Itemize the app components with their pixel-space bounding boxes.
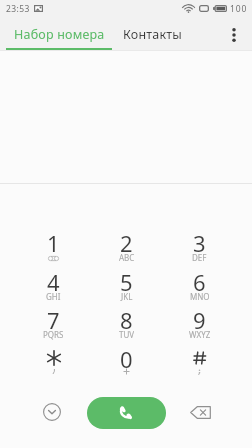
staticText: 5 bbox=[120, 267, 133, 297]
staticText: 23:53 bbox=[6, 3, 30, 15]
button[interactable]: More options bbox=[220, 18, 248, 50]
staticText: 6 bbox=[193, 267, 206, 297]
button[interactable] bbox=[163, 344, 236, 383]
staticText: ABC bbox=[119, 252, 135, 263]
staticText: TUV bbox=[119, 329, 135, 340]
staticText: 4 bbox=[47, 267, 60, 297]
button[interactable]: 0 bbox=[90, 344, 163, 383]
button[interactable]: 2 bbox=[90, 228, 163, 267]
staticText: Набор номера bbox=[14, 26, 105, 43]
staticText: 100 bbox=[230, 3, 248, 15]
staticText: 1 bbox=[47, 228, 60, 258]
staticText: 7 bbox=[47, 305, 60, 335]
button[interactable]: Контакты bbox=[112, 17, 192, 51]
staticText: PQRS bbox=[43, 329, 64, 340]
staticText: GHI bbox=[46, 291, 61, 302]
button[interactable]: 6 bbox=[163, 267, 236, 306]
staticText: JKL bbox=[121, 291, 133, 302]
staticText: DEF bbox=[192, 252, 207, 263]
button[interactable]: 4 bbox=[17, 267, 90, 306]
button[interactable]: 3 bbox=[163, 228, 236, 267]
button[interactable]: Hide keypad bbox=[36, 396, 68, 428]
button[interactable]: 7 bbox=[17, 305, 90, 344]
button[interactable]: 5 bbox=[90, 267, 163, 306]
button[interactable] bbox=[17, 344, 90, 383]
staticText: 9 bbox=[193, 305, 206, 335]
staticText: 2 bbox=[120, 228, 133, 258]
staticText: Контакты bbox=[123, 26, 182, 43]
button[interactable]: 8 bbox=[90, 305, 163, 344]
button[interactable]: 9 bbox=[163, 305, 236, 344]
button[interactable]: Набор номера bbox=[6, 17, 112, 51]
button[interactable]: 1 bbox=[17, 228, 90, 267]
staticText: 8 bbox=[120, 305, 133, 335]
button[interactable]: Backspace bbox=[184, 396, 216, 428]
staticText: 0 bbox=[120, 344, 133, 374]
staticText: WXYZ bbox=[189, 329, 211, 340]
staticText: MNO bbox=[190, 291, 210, 302]
button[interactable]: Call bbox=[87, 397, 166, 429]
staticText: 3 bbox=[193, 228, 206, 258]
